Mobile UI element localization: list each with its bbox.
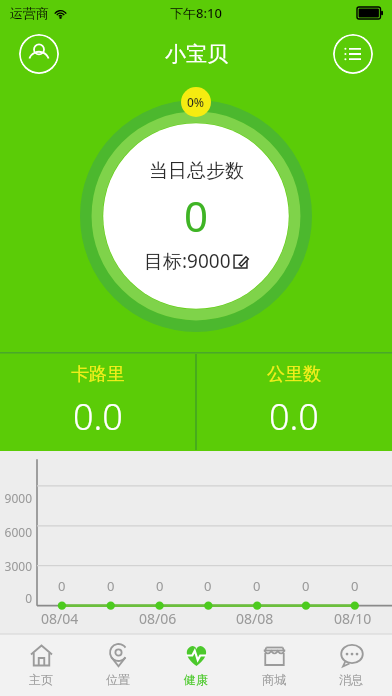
other: Edit goal (232, 253, 249, 270)
button[interactable]: 主页 (4, 634, 78, 696)
staticText: 健康 (184, 672, 208, 687)
staticText: 当日总步数 (149, 159, 244, 183)
staticText: 0 (58, 577, 66, 595)
staticText: 下午8:10 (170, 4, 222, 22)
button[interactable]: Menu (333, 34, 373, 74)
staticText: 运营商 (10, 5, 49, 21)
staticText: 0 (253, 577, 261, 595)
staticText: 3000 (2, 558, 32, 574)
button[interactable]: 商城 (237, 634, 311, 696)
button[interactable]: 位置 (81, 634, 155, 696)
button[interactable]: Profile (19, 34, 59, 74)
button[interactable]: 健康 (159, 634, 233, 696)
staticText: 0.0 (73, 392, 123, 441)
staticText: 08/08 (236, 609, 274, 628)
staticText: 0.0 (269, 392, 319, 441)
staticText: 公里数 (267, 363, 321, 386)
staticText: 9000 (2, 490, 32, 506)
staticText: 主页 (29, 672, 53, 687)
button[interactable]: 卡路里 (0, 352, 196, 451)
staticText: 目标:9000 (144, 248, 231, 274)
staticText: 小宝贝 (165, 41, 228, 67)
staticText: 0 (302, 577, 310, 595)
staticText: 0 (107, 577, 115, 595)
staticText: 08/10 (334, 609, 372, 628)
staticText: 0 (351, 577, 359, 595)
staticText: 商城 (262, 672, 286, 687)
staticText: 卡路里 (71, 363, 125, 386)
staticText: 08/04 (41, 609, 79, 628)
button[interactable]: 目标:9000 (144, 248, 249, 274)
staticText: 0 (184, 187, 209, 244)
staticText: 08/06 (139, 609, 177, 628)
staticText: 位置 (106, 672, 130, 687)
staticText: 0% (187, 94, 205, 110)
staticText: 消息 (339, 672, 363, 687)
staticText: 6000 (2, 524, 32, 540)
staticText: 0 (204, 577, 212, 595)
button[interactable]: 公里数 (196, 352, 392, 451)
staticText: 0 (2, 590, 32, 606)
button[interactable]: 消息 (314, 634, 388, 696)
staticText: 0 (156, 577, 164, 595)
